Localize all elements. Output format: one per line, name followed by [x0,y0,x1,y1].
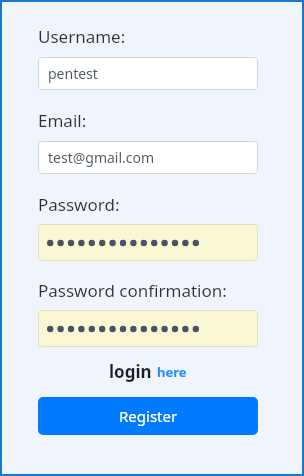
staticText: pentest [48,64,98,83]
staticText: Register [119,406,178,426]
staticText: Password confirmation: [38,279,227,302]
staticText: here [157,363,187,381]
staticText: Password: [38,193,120,216]
button[interactable]: here [157,363,187,383]
staticText: Email: [38,109,87,132]
staticText: test@gmail.com [48,148,155,167]
staticText: Username: [38,25,126,48]
button[interactable]: Email [38,141,258,174]
button[interactable]: Register [38,397,258,435]
button[interactable]: Password confirmation [38,310,258,347]
staticText: login [109,360,152,383]
button[interactable]: Username [38,57,258,90]
button[interactable]: Password [38,224,258,261]
